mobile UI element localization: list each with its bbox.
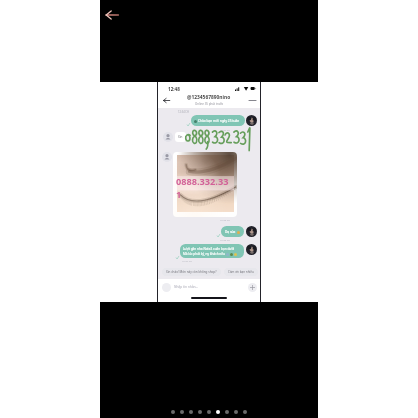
staticText: 12:37 CH: [182, 259, 193, 262]
staticText: Xin chào! Món này còn không shop?: [166, 270, 217, 274]
staticText: 12:35 CH: [220, 218, 231, 221]
button[interactable]: More: [248, 283, 257, 292]
staticText: 0888.332.331: [176, 175, 233, 201]
staticText: Mà lúc phát ký, ny khách nếu: [183, 252, 225, 256]
staticText: Chào bạn mới ngày 25 tuần: [198, 119, 240, 123]
button[interactable]: Cảm ơn bạn nhiều: [224, 268, 258, 276]
staticText: Cảm ơn bạn nhiều: [228, 270, 254, 274]
staticText: 12:34 CH: [178, 110, 189, 114]
button[interactable]: Camera: [162, 283, 171, 292]
staticText: 12:36 CH: [220, 238, 231, 241]
staticText: Nhập tin nhắn...: [174, 285, 199, 289]
staticText: 12:34 CH: [220, 128, 231, 131]
staticText: Lượt gần nha Note3 xuân bạn dưới: [183, 247, 235, 251]
button[interactable]: Xin chào! Món này còn không shop?: [162, 268, 221, 276]
staticText: Dạ sửa: [225, 230, 236, 234]
staticText: Xin: [178, 135, 183, 139]
staticText: 12:48: [168, 86, 180, 92]
staticText: @1234567890nino: [187, 94, 231, 101]
button[interactable]: Back: [99, 2, 125, 28]
staticText: Online 35 phút trước: [195, 102, 224, 106]
